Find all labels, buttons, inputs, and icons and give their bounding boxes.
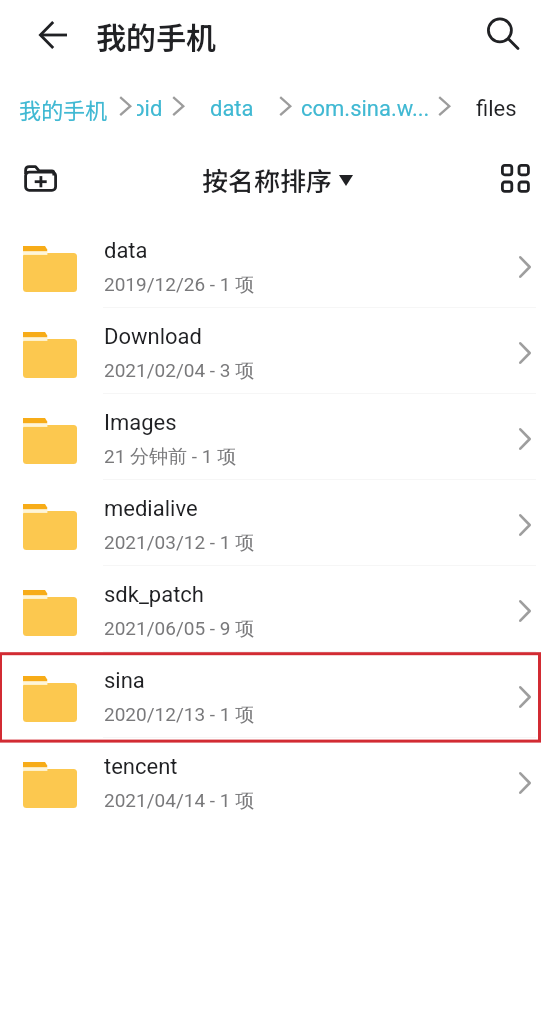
button[interactable]: files — [471, 92, 523, 126]
button[interactable]: 按名称排序 — [196, 158, 362, 202]
button[interactable]: com.sina.w... — [296, 92, 436, 126]
staticText: 我的手机 — [96, 14, 216, 57]
staticText: 2021/02/04 - 3 项 — [104, 359, 255, 383]
staticText: sdk_patch — [104, 582, 204, 608]
button[interactable]: data — [205, 92, 259, 126]
button[interactable]: sdk_patch — [0, 568, 559, 654]
button[interactable]: tencent — [0, 740, 559, 826]
button[interactable]: Open medialive — [500, 501, 548, 549]
staticText: 21 分钟前 - 1 项 — [104, 445, 237, 469]
button[interactable]: Search — [478, 7, 530, 59]
button[interactable]: medialive — [0, 482, 559, 568]
staticText: 按名称排序 — [202, 161, 333, 199]
button[interactable]: Images — [0, 396, 559, 482]
button[interactable]: data — [0, 224, 559, 310]
button[interactable]: Open Images — [500, 415, 548, 463]
staticText: 2021/04/14 - 1 项 — [104, 789, 255, 813]
button[interactable]: Open sina — [500, 673, 548, 721]
staticText: data — [104, 238, 148, 264]
button[interactable]: Open Download — [500, 329, 548, 377]
button[interactable]: oid — [137, 92, 169, 126]
staticText: 我的手机 — [19, 93, 108, 125]
staticText: 2020/12/13 - 1 项 — [104, 703, 255, 727]
staticText: sina — [104, 668, 145, 694]
staticText: Download — [104, 324, 202, 350]
staticText: 2019/12/26 - 1 项 — [104, 273, 255, 297]
staticText: 2021/06/05 - 9 项 — [104, 617, 255, 641]
staticText: com.sina.w... — [301, 96, 430, 122]
button[interactable]: Open sdk_patch — [500, 587, 548, 635]
staticText: files — [476, 96, 517, 122]
button[interactable]: Open tencent — [500, 759, 548, 807]
button[interactable]: 我的手机 — [14, 92, 114, 126]
button[interactable]: Open data — [500, 243, 548, 291]
button[interactable]: Download — [0, 310, 559, 396]
staticText: 2021/03/12 - 1 项 — [104, 531, 255, 555]
button[interactable]: sina — [0, 654, 559, 740]
button[interactable]: New folder — [15, 152, 66, 203]
button[interactable]: Grid view — [490, 153, 541, 204]
button[interactable]: Back — [27, 9, 79, 61]
staticText: oid — [137, 96, 163, 122]
staticText: Images — [104, 410, 177, 436]
staticText: data — [210, 96, 254, 122]
staticText: tencent — [104, 754, 178, 780]
staticText: medialive — [104, 496, 198, 522]
